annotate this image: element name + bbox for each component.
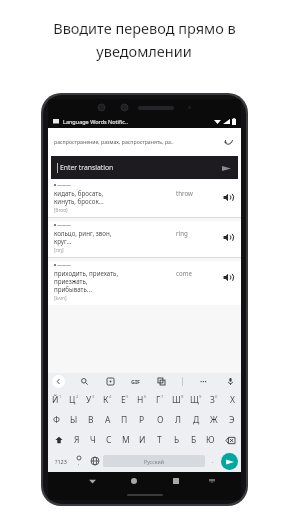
button[interactable]: Б: [185, 430, 202, 450]
button[interactable]: Ж: [205, 410, 223, 430]
staticText: [rɪŋ]: [54, 247, 64, 254]
button[interactable]: Emoji: [71, 450, 87, 472]
staticText: С: [106, 434, 112, 446]
staticText: круг...: [54, 237, 72, 245]
button[interactable]: П: [116, 410, 133, 430]
button[interactable]: Home: [121, 472, 147, 490]
button[interactable]: Ч: [85, 430, 101, 450]
button[interactable]: Hide keyboard: [199, 472, 225, 490]
button[interactable]: Change language: [87, 450, 103, 472]
button[interactable]: Collapse: [221, 134, 235, 148]
button[interactable]: Ц: [65, 390, 82, 410]
staticText: П: [121, 414, 128, 426]
staticText: Р: [139, 414, 145, 426]
button[interactable]: приходить, приехать,: [48, 261, 241, 305]
staticText: кинуть, бросок...: [54, 197, 104, 205]
button[interactable]: Play pronunciation: [220, 229, 236, 245]
staticText: приходить, приехать,: [54, 269, 119, 277]
staticText: И: [139, 434, 146, 446]
button[interactable]: кольцо, ринг, звон,: [48, 221, 241, 257]
button[interactable]: Т: [151, 430, 168, 450]
button[interactable]: Play pronunciation: [220, 269, 236, 285]
button[interactable]: Р: [133, 410, 151, 430]
button[interactable]: Х: [223, 390, 241, 410]
button[interactable]: Recent apps: [163, 472, 189, 490]
staticText: Х: [230, 394, 235, 406]
button[interactable]: Ю: [202, 430, 219, 450]
staticText: уведомлении: [96, 41, 192, 61]
staticText: М: [122, 434, 130, 446]
staticText: Вводите перевод прямо в: [53, 18, 236, 38]
staticText: Ы: [70, 414, 78, 426]
button[interactable]: Shift: [48, 430, 69, 450]
staticText: Ц: [69, 394, 76, 406]
button[interactable]: Н: [133, 390, 151, 410]
staticText: Ь: [174, 434, 180, 446]
button[interactable]: Translate: [155, 375, 168, 388]
button[interactable]: Enter translation: [51, 156, 238, 179]
staticText: Д: [193, 414, 200, 426]
button[interactable]: кидать, бросать,: [48, 181, 241, 217]
staticText: GIF: [131, 378, 141, 385]
staticText: Ш: [172, 394, 181, 406]
button[interactable]: Ы: [65, 410, 82, 430]
staticText: Ю: [206, 434, 215, 446]
button[interactable]: Ф: [48, 410, 65, 430]
button[interactable]: Backspace: [219, 430, 241, 450]
button[interactable]: З: [205, 390, 223, 410]
staticText: 7: [161, 394, 164, 400]
button[interactable]: О: [151, 410, 169, 430]
button[interactable]: Back: [52, 375, 65, 388]
button[interactable]: Щ: [187, 390, 205, 410]
button[interactable]: More options: [197, 375, 210, 388]
staticText: ring: [176, 229, 188, 237]
button[interactable]: Voice input: [224, 375, 237, 388]
button[interactable]: А: [99, 410, 116, 430]
button[interactable]: Е: [116, 390, 133, 410]
button[interactable]: У: [82, 390, 99, 410]
staticText: Е: [121, 394, 126, 406]
staticText: А: [105, 414, 111, 426]
staticText: распространение, размах, распространять,…: [54, 138, 174, 145]
button[interactable]: Send: [221, 453, 238, 470]
staticText: Ф: [53, 414, 60, 426]
staticText: 4: [109, 394, 112, 400]
button[interactable]: Stickers: [104, 375, 117, 388]
button[interactable]: Ш: [169, 390, 187, 410]
staticText: прибывать...: [54, 285, 92, 293]
button[interactable]: Л: [169, 410, 187, 430]
button[interactable]: Play pronunciation: [220, 189, 236, 205]
button[interactable]: ?123: [51, 450, 71, 472]
staticText: З: [210, 394, 215, 406]
button[interactable]: Д: [187, 410, 205, 430]
staticText: come: [176, 269, 192, 277]
button[interactable]: Й: [48, 390, 65, 410]
button[interactable]: Г: [151, 390, 169, 410]
staticText: К: [103, 394, 109, 406]
staticText: Ж: [210, 414, 218, 426]
staticText: 9: [199, 394, 202, 400]
staticText: ?123: [55, 458, 67, 465]
button[interactable]: Back: [79, 472, 105, 490]
staticText: У: [86, 394, 92, 406]
staticText: 8: [181, 394, 184, 400]
button[interactable]: Send: [220, 162, 232, 174]
button[interactable]: Search: [78, 375, 91, 388]
button[interactable]: Э: [223, 410, 241, 430]
staticText: Language Words Notific..: [63, 118, 128, 125]
button[interactable]: Ь: [168, 430, 185, 450]
staticText: 1: [59, 394, 62, 400]
button[interactable]: Русский: [103, 455, 205, 467]
button[interactable]: Я: [69, 430, 85, 450]
staticText: [kʌm]: [54, 295, 67, 302]
staticText: 6: [144, 394, 147, 400]
button[interactable]: В: [82, 410, 99, 430]
staticText: кидать, бросать,: [54, 189, 104, 197]
button[interactable]: И: [134, 430, 151, 450]
button[interactable]: К: [99, 390, 116, 410]
staticText: Enter translation: [60, 163, 114, 172]
button[interactable]: М: [117, 430, 134, 450]
button[interactable]: GIF: [131, 375, 141, 388]
button[interactable]: С: [101, 430, 117, 450]
